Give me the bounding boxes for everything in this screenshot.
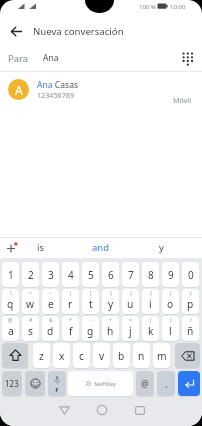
staticText: = [129,317,132,324]
staticText: # [29,317,33,324]
staticText: w [26,297,35,311]
staticText: | [69,290,72,297]
button[interactable]: 2 [22,262,39,287]
button[interactable] [48,371,66,396]
button[interactable] [175,343,200,368]
button[interactable]: } [142,289,159,314]
button[interactable]: ] [102,289,119,314]
button[interactable]: 8 [142,262,159,287]
button[interactable]: / [182,316,199,341]
staticText: 9 [168,268,174,282]
staticText: / [190,317,192,324]
staticText: n [138,349,145,363]
button[interactable]: ( [162,289,179,314]
staticText: Nueva conversación [33,25,124,38]
staticText: l [169,324,172,338]
staticText: b [118,349,125,363]
button[interactable]: 1 [2,262,19,287]
button[interactable]: ) [182,289,199,314]
button[interactable]: m [153,343,170,368]
staticText: 6 [108,268,114,282]
staticText: r [68,297,73,311]
button[interactable]: c [73,343,90,368]
button[interactable]: and [86,239,116,256]
staticText: d [47,324,54,338]
staticText: 100 % [139,3,156,11]
staticText: j [129,324,132,338]
button[interactable]: ) [162,316,179,341]
button[interactable]: - [82,316,99,341]
button[interactable]: b [113,343,130,368]
button[interactable]: SwiftKey [68,371,133,396]
button[interactable]: 6 [102,262,119,287]
staticText: 0 [188,268,194,282]
staticText: 10:00 [170,3,186,11]
button[interactable]: 123 [2,371,22,396]
staticText: v [99,349,105,363]
staticText: @ [141,378,149,390]
button[interactable]: { [122,289,139,314]
staticText: g [87,324,94,338]
staticText: \ [10,290,12,297]
button[interactable]: + [102,316,119,341]
staticText: i [149,297,152,311]
staticText: u [127,297,134,311]
staticText: h [107,324,114,338]
button[interactable]: \ [2,289,19,314]
button[interactable]: | [62,289,79,314]
staticText: and [92,241,110,254]
button[interactable]: x [53,343,70,368]
staticText: - [90,317,92,324]
staticText: 5 [88,268,94,282]
staticText: e [48,297,54,311]
button[interactable] [177,48,198,69]
staticText: 3 [48,268,54,282]
button[interactable]: ~ [42,289,59,314]
button[interactable]: y [146,239,176,256]
button[interactable] [89,398,114,422]
button[interactable]: & [42,316,59,341]
staticText: Móvil [173,95,192,105]
button[interactable]: v [93,343,110,368]
staticText: SwiftKey [94,380,116,387]
staticText: t [89,297,93,311]
button[interactable]: 3 [42,262,59,287]
button[interactable]: 5 [82,262,99,287]
staticText: Ana Casas [37,79,79,89]
staticText: & [49,317,53,324]
staticText: y [108,297,114,311]
staticText: p [187,297,194,311]
button[interactable]: ^ [22,289,39,314]
staticText: A [15,82,23,98]
button[interactable]: is [26,239,56,256]
button[interactable] [2,343,28,368]
button[interactable]: 4 [62,262,79,287]
staticText: 4 [68,268,74,282]
staticText: ( [150,317,152,324]
staticText: Ana [43,52,59,64]
staticText: 123 [5,378,19,389]
staticText: [ [90,290,92,297]
button[interactable]: @ [2,316,19,341]
staticText: ~ [49,290,52,297]
button[interactable] [25,371,45,396]
button[interactable]: 9 [162,262,179,287]
button[interactable]: [ [82,289,99,314]
button[interactable]: 0 [182,262,199,287]
button[interactable] [4,240,20,256]
button[interactable]: A [0,73,202,106]
button[interactable] [178,371,200,396]
button[interactable]: @ [136,371,154,396]
button[interactable]: = [122,316,139,341]
button[interactable] [127,398,152,422]
staticText: o [167,297,174,311]
button[interactable] [52,398,77,422]
button[interactable]: # [22,316,39,341]
button[interactable] [6,21,27,42]
button[interactable]: n [133,343,150,368]
button[interactable]: * [62,316,79,341]
button[interactable]: z [33,343,50,368]
button[interactable]: 7 [122,262,139,287]
button[interactable]: ( [142,316,159,341]
button[interactable]: . [157,371,175,396]
